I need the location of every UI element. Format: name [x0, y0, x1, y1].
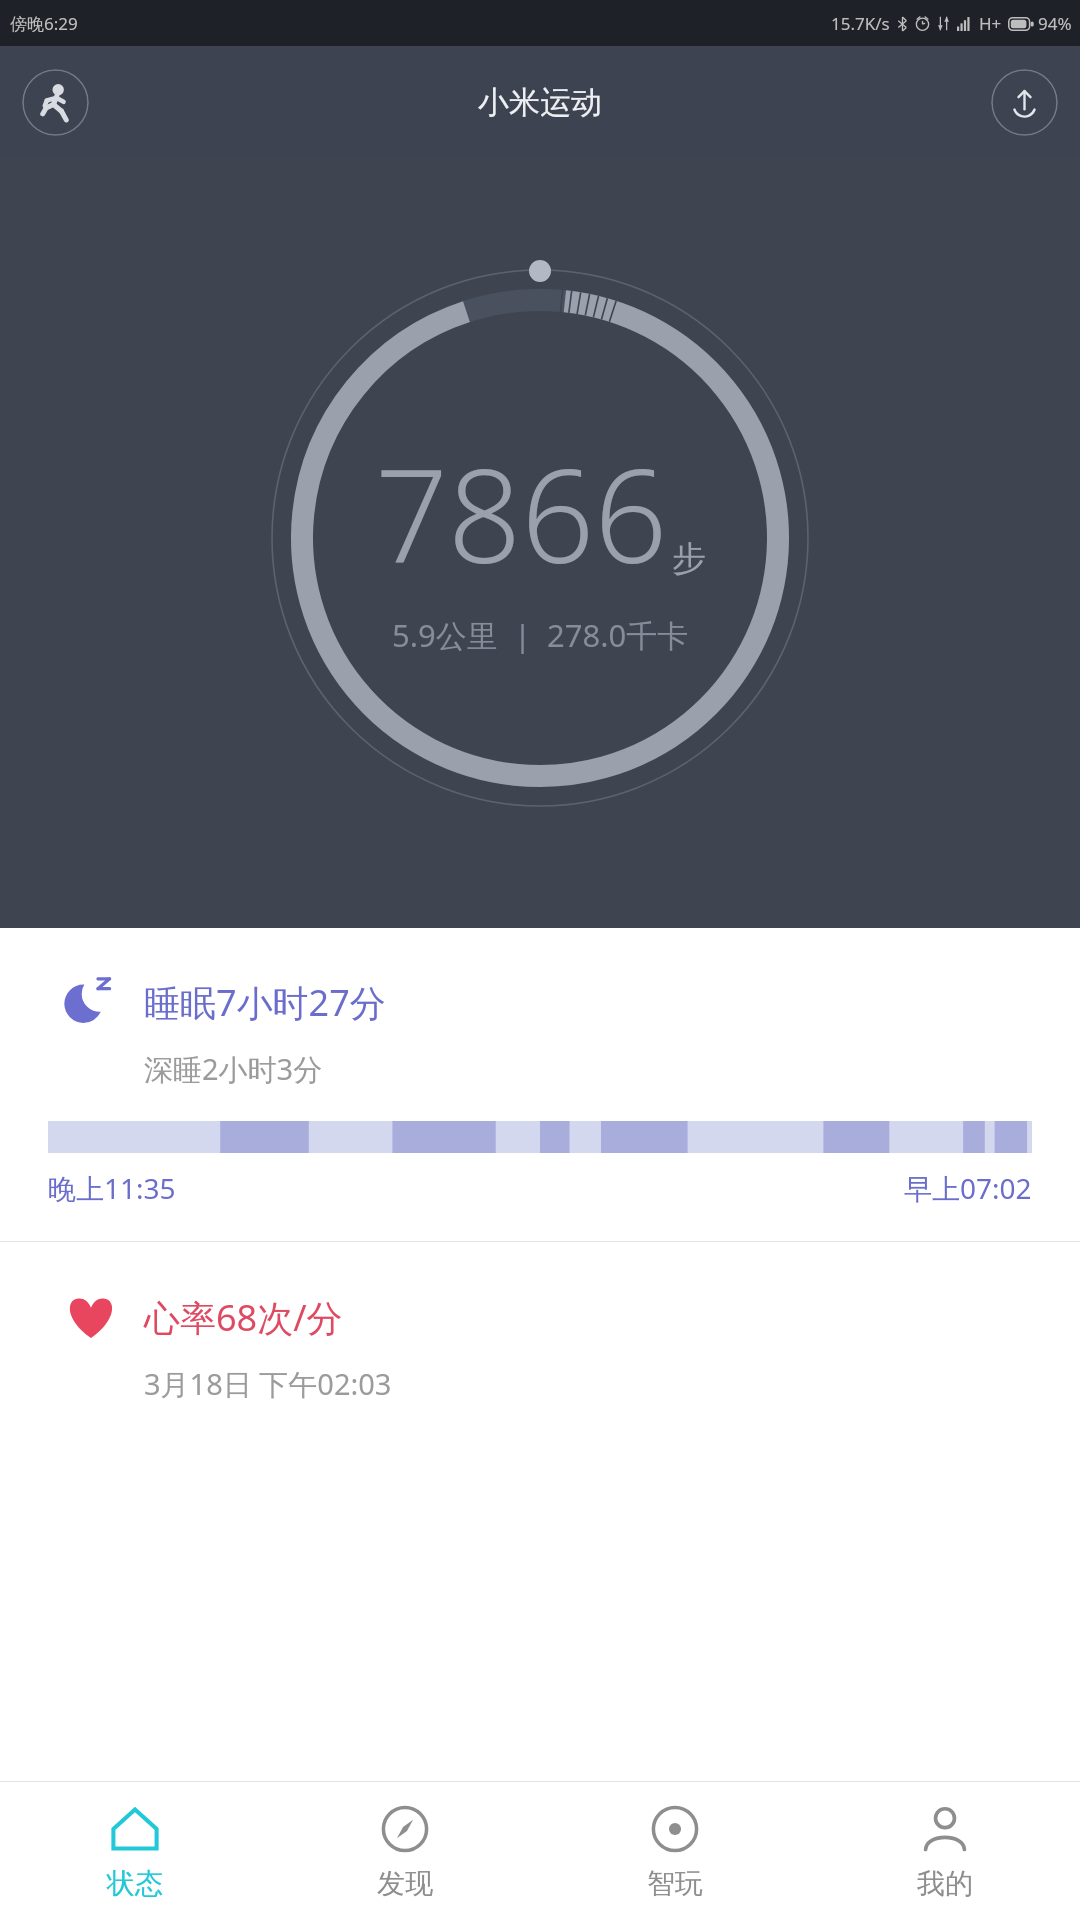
button[interactable]: Share [991, 69, 1058, 136]
staticText: 深睡2小时3分 [144, 1049, 323, 1089]
staticText: 94% [1038, 12, 1072, 35]
staticText: 15.7K/s [831, 12, 890, 35]
button[interactable]: 智玩 [540, 1782, 810, 1920]
button[interactable]: 我的 [810, 1782, 1080, 1920]
button[interactable]: Start workout [22, 69, 89, 136]
button[interactable]: 7866 [0, 158, 1080, 928]
button[interactable]: 睡眠7小时27分 [0, 929, 1080, 1241]
staticText: 3月18日 下午02:03 [144, 1364, 392, 1404]
button[interactable]: 发现 [270, 1782, 540, 1920]
staticText: 5.9公里 | 278.0千卡 [392, 614, 689, 656]
staticText: 傍晚6:29 [10, 12, 78, 35]
staticText: 早上07:02 [904, 1169, 1032, 1207]
staticText: 我的 [917, 1866, 973, 1901]
staticText: 心率68次/分 [144, 1293, 343, 1342]
staticText: 睡眠7小时27分 [144, 978, 386, 1027]
staticText: 7866 [375, 426, 668, 600]
staticText: 小米运动 [478, 83, 602, 122]
staticText: 智玩 [647, 1866, 703, 1901]
button[interactable]: 心率68次/分 [0, 1242, 1080, 1434]
staticText: 发现 [377, 1866, 433, 1901]
button[interactable]: 状态 [0, 1782, 270, 1920]
staticText: 步 [672, 537, 706, 580]
staticText: H+ [979, 12, 1002, 35]
staticText: 状态 [107, 1866, 163, 1901]
staticText: 晚上11:35 [48, 1169, 176, 1207]
